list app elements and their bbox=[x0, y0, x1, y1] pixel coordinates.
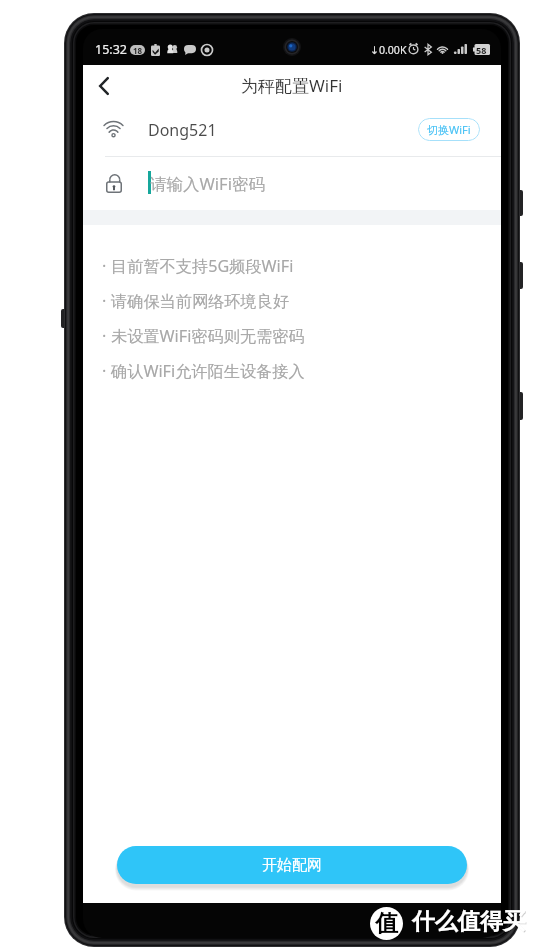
staticText: 为秤配置WiFi bbox=[241, 74, 343, 97]
staticText: 确认WiFi允许陌生设备接入 bbox=[111, 360, 305, 382]
staticText: 开始配网 bbox=[262, 856, 322, 875]
staticText: 什么值得买 bbox=[413, 908, 527, 937]
button[interactable]: Back bbox=[83, 65, 124, 106]
staticText: 请确保当前网络环境良好 bbox=[111, 291, 290, 311]
button[interactable]: 切换WiFi bbox=[418, 118, 480, 141]
staticText: 请输入WiFi密码 bbox=[150, 172, 265, 195]
staticText: 18 bbox=[133, 45, 143, 55]
button[interactable]: 开始配网 bbox=[117, 846, 467, 884]
staticText: · bbox=[102, 360, 107, 382]
staticText: Dong521 bbox=[148, 119, 217, 141]
staticText: 什么值得买 bbox=[412, 907, 526, 936]
staticText: ↓0.00K bbox=[370, 43, 407, 57]
staticText: 15:32 bbox=[95, 41, 127, 58]
staticText: · bbox=[102, 255, 107, 277]
staticText: 值 bbox=[375, 909, 398, 938]
staticText: 58 bbox=[476, 44, 487, 56]
staticText: 目前暂不支持5G频段WiFi bbox=[111, 255, 294, 277]
staticText: · bbox=[102, 325, 107, 347]
staticText: 未设置WiFi密码则无需密码 bbox=[111, 325, 305, 347]
staticText: 切换WiFi bbox=[427, 122, 471, 137]
staticText: · bbox=[102, 290, 107, 312]
